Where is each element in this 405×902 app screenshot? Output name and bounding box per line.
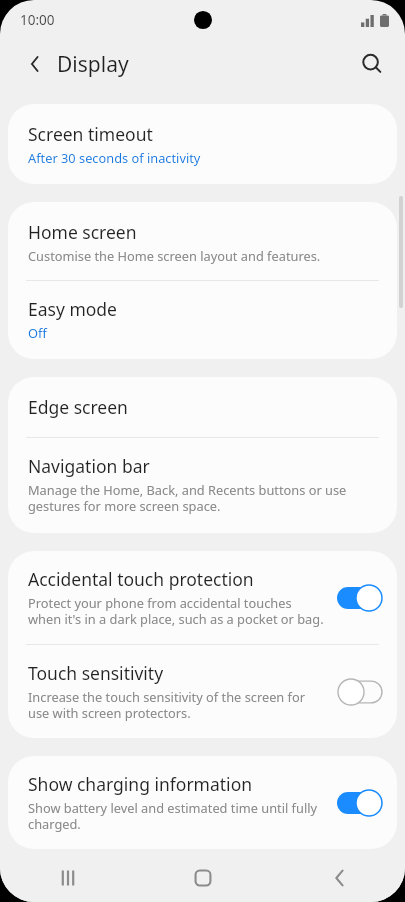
button[interactable]: Touch sensitivity: [8, 645, 397, 738]
button[interactable]: Accidental touch protection: [8, 551, 397, 644]
staticText: Screen timeout: [28, 122, 153, 146]
button[interactable]: Search: [351, 43, 393, 85]
staticText: Accidental touch protection: [28, 567, 254, 591]
staticText: Easy mode: [28, 297, 117, 321]
button[interactable]: Recents: [0, 853, 135, 902]
button[interactable]: Back: [12, 43, 54, 85]
button[interactable]: Home screen: [8, 202, 397, 280]
button[interactable]: Back: [270, 853, 405, 902]
button[interactable]: Show charging information: [8, 756, 397, 849]
button[interactable]: Off: [337, 678, 383, 706]
staticText: Display: [57, 50, 129, 79]
staticText: Increase the touch sensitivity of the sc…: [28, 688, 327, 722]
button[interactable]: Edge screen: [8, 377, 397, 437]
button[interactable]: On: [337, 789, 383, 817]
staticText: Customise the Home screen layout and fea…: [28, 247, 321, 264]
staticText: Home screen: [28, 220, 137, 244]
staticText: Manage the Home, Back, and Recents butto…: [28, 481, 377, 515]
staticText: Show charging information: [28, 772, 253, 796]
button[interactable]: Easy mode: [8, 281, 397, 359]
staticText: Touch sensitivity: [28, 661, 164, 685]
staticText: Protect your phone from accidental touch…: [28, 594, 327, 628]
staticText: Navigation bar: [28, 454, 150, 478]
button[interactable]: Home: [135, 853, 270, 902]
button[interactable]: Navigation bar: [8, 438, 397, 533]
staticText: 10:00: [20, 11, 55, 29]
staticText: Show battery level and estimated time un…: [28, 799, 327, 833]
staticText: Off: [28, 324, 47, 341]
staticText: After 30 seconds of inactivity: [28, 149, 201, 166]
button[interactable]: On: [337, 584, 383, 612]
button[interactable]: Screen timeout: [8, 104, 397, 184]
staticText: Edge screen: [28, 395, 128, 419]
